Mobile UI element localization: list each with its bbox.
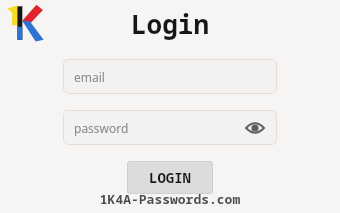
other: 1K4A logo — [6, 4, 44, 42]
button[interactable]: Show password — [244, 117, 266, 139]
button[interactable]: LOGIN — [127, 161, 213, 194]
button[interactable]: email — [63, 59, 277, 94]
staticText: LOGIN — [149, 168, 191, 187]
button[interactable]: 1K4A-Passwords.com — [0, 190, 340, 208]
staticText: Login — [0, 6, 340, 41]
button[interactable]: password — [63, 110, 277, 145]
staticText: email — [74, 69, 105, 85]
staticText: password — [74, 120, 244, 136]
